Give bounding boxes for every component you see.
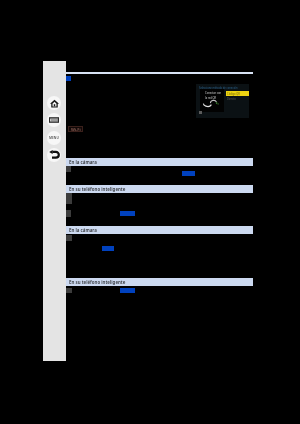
button[interactable]: En la cámara [66,158,253,166]
button[interactable]: En la cámara [66,226,253,234]
staticText: MENU [49,136,59,140]
staticText: Conectar con la red QR [205,91,222,100]
staticText: Código QR [227,92,240,96]
staticText: Seleccione método de conexión [199,86,238,90]
staticText: Directo [227,97,236,101]
button[interactable]: Back [47,148,61,162]
staticText: En la cámara [69,227,97,233]
button[interactable]: Camera screen illustration [196,84,249,118]
button[interactable]: Wi-Fi [69,127,82,131]
staticText: Wi-Fi [71,127,81,131]
button[interactable]: En su teléfono inteligente [66,278,253,286]
staticText: En su teléfono inteligente [69,279,126,285]
staticText: En la cámara [69,159,97,165]
button[interactable]: Display [47,113,61,127]
button[interactable]: Home [47,96,61,110]
button[interactable]: Menu [47,131,61,145]
staticText: En su teléfono inteligente [69,186,126,192]
button[interactable]: En su teléfono inteligente [66,185,253,193]
